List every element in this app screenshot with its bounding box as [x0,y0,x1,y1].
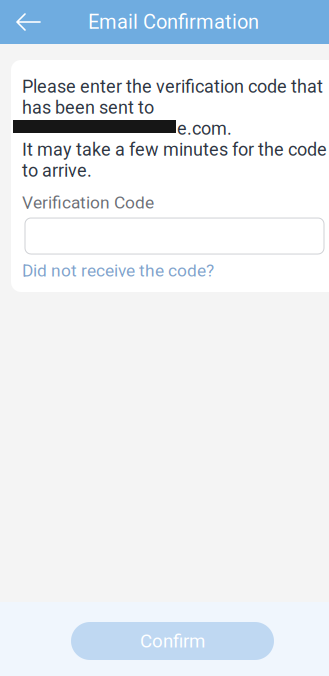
staticText: Verification Code [22,192,154,213]
button[interactable]: Back [0,0,51,44]
staticText: Email Confirmation [88,10,259,34]
button[interactable]: Did not receive the code? [22,254,328,280]
staticText: Did not receive the code? [22,260,214,281]
staticText: has been sent to [22,97,154,118]
staticText: Please enter the verification code that [22,76,323,97]
button[interactable]: Confirm [71,622,274,660]
staticText: Confirm [140,630,205,652]
staticText: to arrive. [22,160,92,181]
staticText: It may take a few minutes for the code [22,139,327,160]
staticText: e.com. [177,118,232,139]
